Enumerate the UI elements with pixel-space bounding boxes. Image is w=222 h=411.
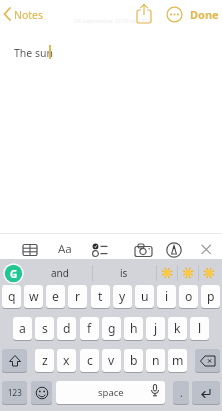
staticText: s (42, 320, 48, 337)
button[interactable]: k (168, 317, 187, 340)
button[interactable]: r (68, 285, 87, 308)
staticText: t (98, 288, 103, 305)
button[interactable]: z (35, 349, 54, 372)
staticText: g (108, 320, 116, 337)
button[interactable]: Notes (0, 0, 50, 28)
button[interactable]: p (201, 285, 220, 308)
staticText: x (63, 352, 70, 369)
button[interactable]: t (91, 285, 110, 308)
staticText: G (10, 267, 18, 281)
button[interactable]: Done (188, 5, 220, 23)
button[interactable]: G (3, 263, 24, 284)
button[interactable] (192, 381, 220, 404)
button[interactable]: 123 (2, 381, 27, 404)
staticText: h (130, 320, 138, 337)
staticText: v (108, 352, 115, 369)
button[interactable]: q (2, 285, 21, 308)
button[interactable]: j (146, 317, 165, 340)
staticText: y (119, 288, 126, 305)
button[interactable] (199, 243, 214, 257)
staticText: Done (190, 7, 219, 22)
button[interactable] (134, 3, 154, 25)
button[interactable]: . (173, 381, 189, 404)
button[interactable]: is (92, 260, 156, 286)
button[interactable]: o (179, 285, 198, 308)
staticText: u (141, 288, 149, 305)
staticText: n (152, 352, 160, 369)
button[interactable]: g (102, 317, 121, 340)
button[interactable] (166, 6, 183, 23)
staticText: space (98, 386, 124, 399)
staticText: a (19, 320, 26, 337)
button[interactable]: c (80, 349, 99, 372)
button[interactable]: m (168, 349, 187, 372)
staticText: c (87, 352, 93, 369)
staticText: is (120, 266, 128, 280)
button[interactable]: w (24, 285, 43, 308)
button[interactable] (195, 349, 220, 372)
staticText: d (63, 320, 71, 337)
staticText: Aa (58, 241, 72, 257)
button[interactable]: a (13, 317, 32, 340)
staticText: w (29, 288, 39, 305)
button[interactable] (179, 264, 197, 282)
button[interactable]: i (157, 285, 176, 308)
button[interactable] (2, 349, 27, 372)
staticText: i (165, 288, 169, 305)
button[interactable]: space (56, 381, 165, 404)
button[interactable]: Aa (55, 240, 75, 258)
staticText: m (172, 352, 184, 369)
staticText: e (52, 288, 59, 305)
staticText: z (42, 352, 48, 369)
staticText: f (87, 320, 92, 337)
button[interactable] (22, 243, 38, 257)
staticText: l (198, 320, 202, 337)
button[interactable]: x (57, 349, 76, 372)
button[interactable] (158, 264, 176, 282)
staticText: b (130, 352, 138, 369)
button[interactable] (134, 243, 153, 257)
button[interactable]: l (190, 317, 209, 340)
button[interactable]: and (27, 260, 92, 286)
staticText: and (51, 266, 69, 280)
button[interactable]: n (146, 349, 165, 372)
button[interactable]: y (113, 285, 132, 308)
staticText: 123 (8, 387, 22, 398)
button[interactable]: d (57, 317, 76, 340)
button[interactable] (166, 242, 182, 258)
staticText: q (8, 288, 16, 305)
button[interactable] (200, 264, 218, 282)
button[interactable]: s (35, 317, 54, 340)
button[interactable] (31, 381, 52, 404)
staticText: r (75, 288, 81, 305)
button[interactable]: b (124, 349, 143, 372)
staticText: j (154, 320, 158, 337)
button[interactable]: e (46, 285, 65, 308)
staticText: 28 September 2019 at 17:02 (74, 17, 153, 25)
button[interactable]: v (102, 349, 121, 372)
button[interactable]: u (135, 285, 154, 308)
staticText: p (207, 288, 215, 305)
button[interactable] (90, 243, 110, 257)
staticText: k (174, 320, 181, 337)
button[interactable]: f (80, 317, 99, 340)
button[interactable]: h (124, 317, 143, 340)
staticText: The sun (14, 46, 53, 60)
staticText: . (180, 386, 183, 400)
staticText: o (185, 288, 193, 305)
staticText: Notes (14, 8, 44, 22)
